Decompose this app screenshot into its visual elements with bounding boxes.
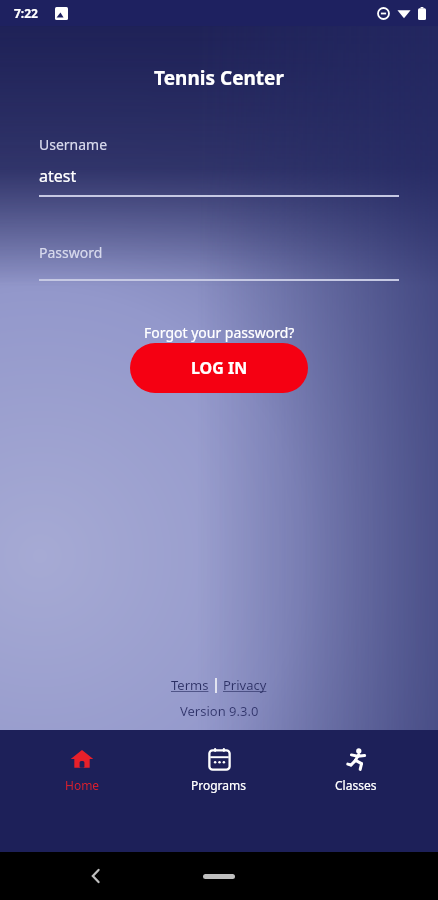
other: Home — [203, 874, 235, 879]
staticText: Programs — [191, 777, 247, 793]
staticText: Terms — [171, 676, 209, 694]
other: Back — [88, 868, 104, 884]
staticText: Forgot your password? — [144, 323, 295, 342]
staticText: Tennis Center — [154, 65, 284, 91]
staticText: LOG IN — [191, 357, 248, 379]
button[interactable]: Privacy — [217, 674, 273, 696]
button[interactable]: Classes — [301, 742, 411, 797]
button[interactable]: Terms — [165, 674, 215, 696]
button[interactable]: atest — [39, 165, 399, 187]
staticText: Privacy — [223, 676, 267, 694]
staticText: Version 9.3.0 — [180, 702, 259, 720]
button[interactable]: LOG IN — [130, 343, 308, 393]
button[interactable]: Password — [39, 243, 399, 262]
staticText: 7:22 — [14, 5, 38, 21]
staticText: Classes — [335, 777, 377, 793]
button[interactable]: Programs — [164, 742, 274, 797]
button[interactable]: Home — [27, 742, 137, 797]
staticText: Home — [65, 777, 100, 793]
button[interactable]: Forgot your password? — [134, 320, 305, 345]
staticText: Username — [39, 135, 108, 154]
